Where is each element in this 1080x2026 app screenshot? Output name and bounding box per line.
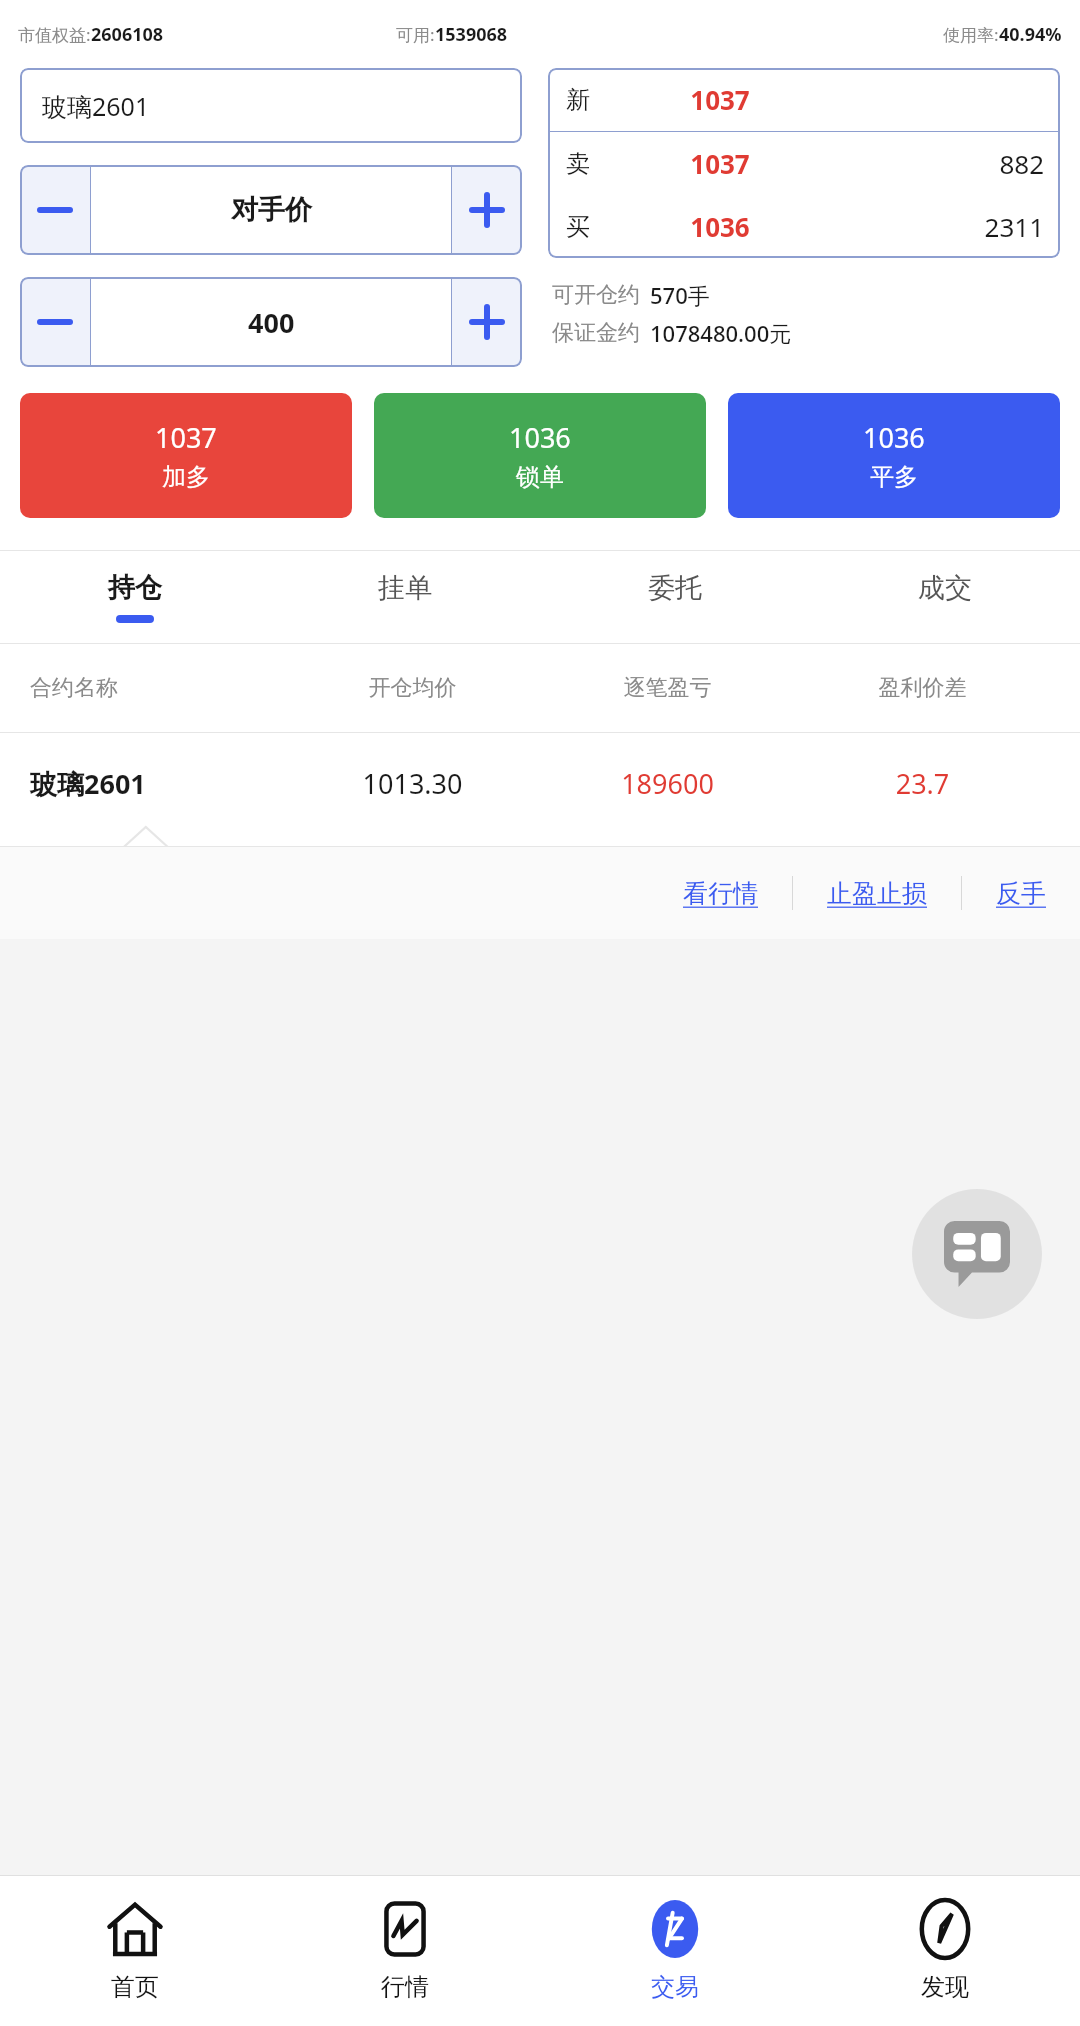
button[interactable]: 行情 (270, 1876, 540, 2026)
button[interactable]: 玻璃2601 (20, 68, 522, 143)
staticText: 2311 (828, 209, 1044, 244)
staticText: 挂单 (378, 571, 432, 605)
button[interactable]: 减少 (20, 165, 90, 255)
staticText: 开仓均价 (285, 674, 540, 702)
staticText: 1078480.00元 (650, 318, 792, 348)
staticText: 交易 (651, 1972, 699, 2002)
button[interactable]: 委托 (540, 551, 810, 643)
staticText: 新 (566, 85, 612, 115)
staticText: 使用率: (943, 23, 999, 46)
staticText: 首页 (111, 1972, 159, 2002)
staticText: 189600 (540, 765, 795, 802)
staticText: 23.7 (795, 765, 1050, 802)
staticText: 止盈止损 (827, 878, 927, 909)
button[interactable]: 增加 (452, 165, 522, 255)
staticText: 1036 (612, 209, 828, 244)
button[interactable]: 新 (548, 68, 1060, 131)
button[interactable]: 挂单 (270, 551, 540, 643)
staticText: 盈利价差 (795, 674, 1050, 702)
button[interactable]: 交易 (540, 1876, 810, 2026)
staticText: 400 (248, 304, 295, 341)
button[interactable]: 减少 (20, 277, 90, 367)
staticText: 玻璃2601 (42, 89, 150, 123)
staticText: 40.94% (999, 22, 1062, 47)
staticText: 可用: (396, 23, 435, 46)
button[interactable]: 对手价 (91, 165, 451, 255)
button[interactable]: 1036 (728, 393, 1060, 518)
staticText: 2606108 (91, 22, 164, 47)
button[interactable]: 成交 (810, 551, 1080, 643)
button[interactable]: 增加 (452, 277, 522, 367)
staticText: 锁单 (516, 462, 564, 492)
staticText: 882 (828, 146, 1044, 181)
button[interactable]: 客服消息 (912, 1189, 1042, 1319)
button[interactable]: 反手 (992, 872, 1050, 915)
staticText: 行情 (381, 1972, 429, 2002)
button[interactable]: 发现 (810, 1876, 1080, 2026)
button[interactable]: 1036 (374, 393, 706, 518)
staticText: 对手价 (231, 193, 312, 227)
staticText: 买 (566, 212, 612, 242)
staticText: 反手 (996, 878, 1046, 909)
staticText: 570手 (650, 280, 710, 310)
button[interactable]: 止盈止损 (823, 872, 931, 915)
staticText: 持仓 (108, 571, 162, 605)
button[interactable]: 400 (91, 277, 451, 367)
staticText: 加多 (162, 462, 210, 492)
staticText: 1539068 (435, 22, 508, 47)
button[interactable]: 卖 (548, 132, 1060, 195)
button[interactable]: 看行情 (679, 872, 762, 915)
staticText: 平多 (870, 462, 918, 492)
staticText: 1036 (509, 419, 571, 456)
staticText: 卖 (566, 149, 612, 179)
staticText: 1037 (612, 82, 828, 117)
button[interactable]: 1037 (20, 393, 352, 518)
staticText: 玻璃2601 (30, 765, 285, 802)
staticText: 合约名称 (30, 674, 285, 702)
staticText: 1013.30 (285, 765, 540, 802)
staticText: 1036 (863, 419, 925, 456)
button[interactable]: 新 (548, 68, 1060, 258)
button[interactable]: 玻璃2601 (0, 733, 1080, 833)
staticText: 可开仓约 (552, 281, 640, 309)
staticText: 市值权益: (18, 23, 91, 46)
button[interactable]: 买 (548, 195, 1060, 258)
staticText: 看行情 (683, 878, 758, 909)
staticText: 发现 (921, 1972, 969, 2002)
staticText: 委托 (648, 571, 702, 605)
staticText: 逐笔盈亏 (540, 674, 795, 702)
staticText: 成交 (918, 571, 972, 605)
button[interactable]: 首页 (0, 1876, 270, 2026)
staticText: 保证金约 (552, 319, 640, 347)
button[interactable]: 持仓 (0, 551, 270, 643)
staticText: 1037 (612, 146, 828, 181)
staticText: 1037 (155, 419, 217, 456)
